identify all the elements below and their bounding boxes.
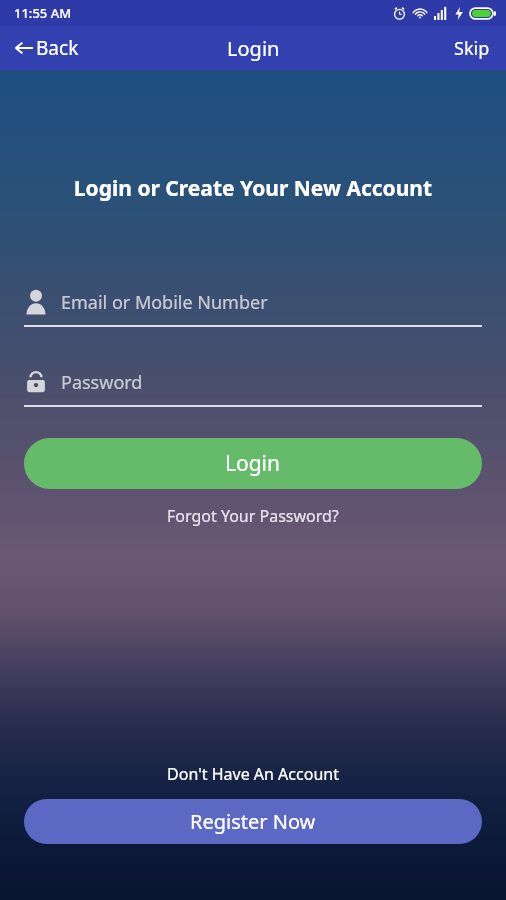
- staticText: Login: [225, 449, 281, 478]
- button[interactable]: Register Now: [24, 799, 482, 844]
- staticText: Password: [61, 370, 143, 395]
- staticText: Forgot Your Password?: [167, 505, 339, 527]
- staticText: 11:55 AM: [14, 4, 72, 22]
- button[interactable]: Login: [24, 438, 482, 489]
- staticText: Login: [227, 35, 280, 62]
- button[interactable]: Forgot Your Password?: [24, 501, 482, 531]
- staticText: Register Now: [190, 808, 316, 835]
- button[interactable]: Skip: [438, 28, 506, 69]
- staticText: Login or Create Your New Account: [24, 174, 482, 203]
- button[interactable]: Back: [0, 29, 91, 67]
- staticText: Skip: [454, 36, 490, 61]
- staticText: Back: [36, 35, 79, 61]
- staticText: Don't Have An Account: [24, 763, 482, 785]
- staticText: Email or Mobile Number: [61, 290, 268, 315]
